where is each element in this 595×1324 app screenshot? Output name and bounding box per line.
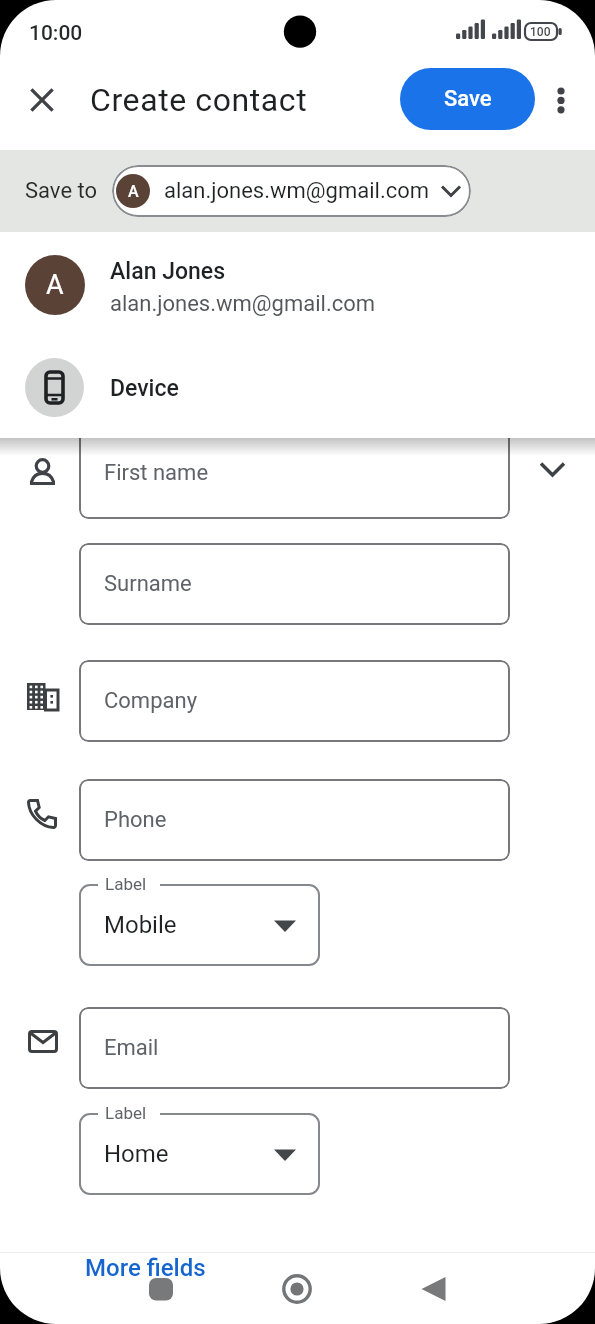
staticText: Alan Jones <box>110 258 226 285</box>
button[interactable]: Save <box>400 68 535 130</box>
staticText: Label <box>105 1103 147 1123</box>
staticText: Create contact <box>90 81 308 119</box>
button[interactable] <box>22 80 62 120</box>
staticText: alan.jones.wm@gmail.com <box>110 291 376 316</box>
button[interactable] <box>79 1113 320 1195</box>
staticText: alan.jones.wm@gmail.com <box>164 178 430 204</box>
staticText: A <box>128 182 139 201</box>
button[interactable] <box>112 165 471 217</box>
button[interactable] <box>79 428 510 519</box>
button[interactable] <box>275 1267 319 1311</box>
staticText: Home <box>104 1140 169 1168</box>
staticText: 100 <box>530 25 551 39</box>
staticText: Device <box>110 375 179 402</box>
staticText: Mobile <box>104 911 177 939</box>
button[interactable] <box>0 345 595 433</box>
staticText: First name <box>104 460 209 486</box>
button[interactable] <box>79 779 510 861</box>
button[interactable]: More fields <box>85 1252 206 1284</box>
button[interactable] <box>139 1268 183 1312</box>
staticText: Label <box>105 874 147 894</box>
button[interactable] <box>411 1267 455 1311</box>
staticText: More fields <box>85 1254 206 1282</box>
button[interactable] <box>0 240 595 331</box>
staticText: Save to <box>25 178 98 204</box>
button[interactable] <box>79 884 320 966</box>
button[interactable] <box>79 1007 510 1089</box>
staticText: Surname <box>104 571 192 597</box>
button[interactable] <box>545 78 577 122</box>
staticText: Company <box>104 688 198 714</box>
staticText: Save <box>444 86 492 112</box>
button[interactable] <box>79 660 510 742</box>
button[interactable] <box>530 441 575 486</box>
button[interactable] <box>79 543 510 625</box>
staticText: A <box>46 269 64 301</box>
staticText: Email <box>104 1035 159 1061</box>
staticText: Phone <box>104 807 167 833</box>
staticText: 10:00 <box>29 21 83 46</box>
